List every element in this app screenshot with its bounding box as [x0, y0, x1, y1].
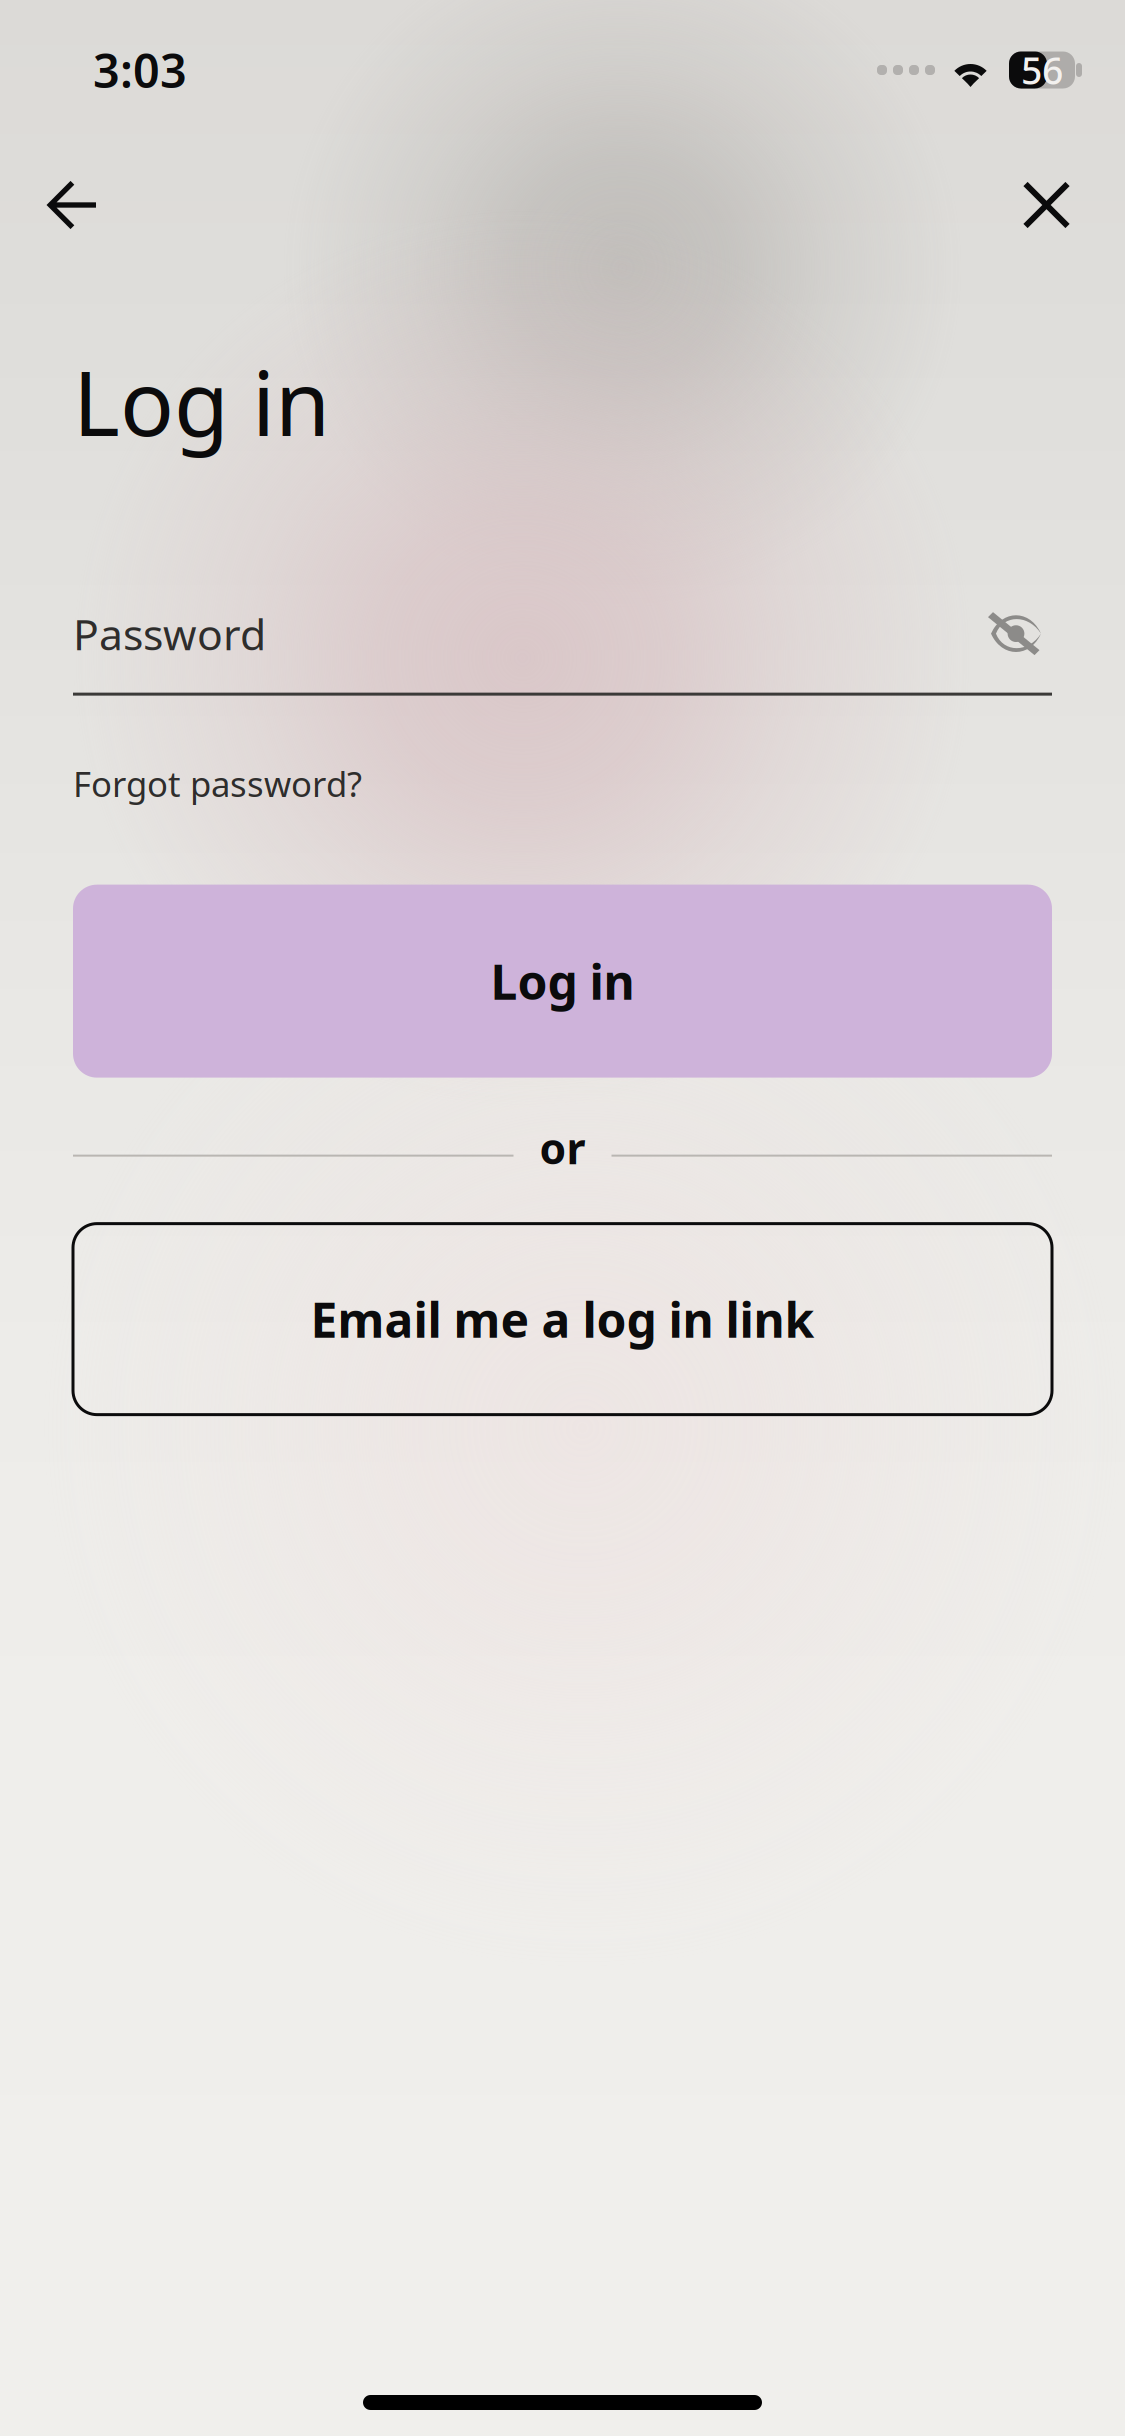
staticText: Email me a log in link: [310, 1287, 814, 1351]
button[interactable]: Close: [999, 157, 1095, 253]
button[interactable]: Back: [24, 157, 120, 253]
staticText: Password: [73, 605, 266, 662]
staticText: Log in: [73, 342, 330, 461]
button[interactable]: Email me a log in link: [73, 1224, 1052, 1415]
staticText: 3:03: [93, 39, 187, 101]
staticText: 56: [1021, 45, 1063, 95]
button[interactable]: Forgot password?: [73, 764, 362, 804]
button[interactable]: Log in: [73, 885, 1052, 1078]
staticText: Forgot password?: [73, 761, 362, 807]
staticText: or: [539, 1119, 585, 1176]
staticText: Log in: [490, 949, 634, 1013]
button[interactable]: Show password: [980, 606, 1052, 662]
